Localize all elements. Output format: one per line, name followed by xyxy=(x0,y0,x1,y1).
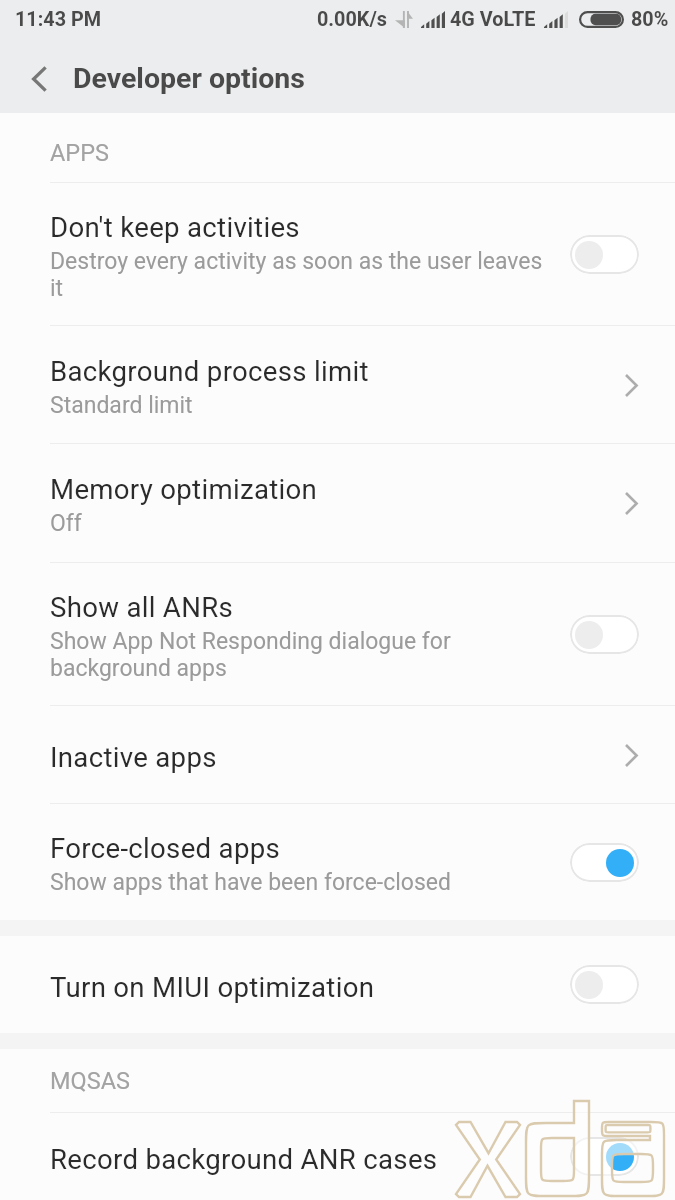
staticText: Standard limit xyxy=(50,392,193,419)
staticText: Memory optimization xyxy=(50,473,318,505)
staticText: Off xyxy=(50,510,82,537)
button[interactable]: Open xyxy=(619,475,675,531)
button[interactable]: Memory optimization xyxy=(0,444,675,562)
staticText: 80% xyxy=(631,8,669,31)
staticText: Show apps that have been force-closed xyxy=(50,869,451,896)
staticText: Force-closed apps xyxy=(50,832,281,864)
button[interactable]: Open xyxy=(619,357,675,413)
button[interactable]: Inactive apps xyxy=(0,706,675,803)
staticText: Turn on MIUI optimization xyxy=(50,971,375,1003)
button[interactable]: Switch off xyxy=(570,615,639,654)
staticText: MQSAS xyxy=(50,1067,130,1095)
staticText: Developer options xyxy=(73,62,305,95)
button[interactable]: Record background ANR cases xyxy=(0,1113,675,1200)
button[interactable]: Switch on xyxy=(570,1137,639,1176)
staticText: 4G VoLTE xyxy=(450,8,536,31)
button[interactable]: Open xyxy=(619,727,675,783)
button[interactable]: Switch off xyxy=(570,965,639,1004)
staticText: 11:43 PM xyxy=(15,8,102,31)
staticText: APPS xyxy=(50,139,109,167)
button[interactable]: Switch off xyxy=(570,235,639,274)
staticText: Show App Not Responding dialogue for bac… xyxy=(50,628,545,682)
staticText: 0.00K/s xyxy=(317,8,387,31)
staticText: Record background ANR cases xyxy=(50,1143,438,1175)
button[interactable]: Back xyxy=(0,45,68,113)
staticText: Inactive apps xyxy=(50,741,217,773)
button[interactable]: Background process limit xyxy=(0,326,675,443)
button[interactable]: Don't keep activities xyxy=(0,183,675,325)
staticText: Don't keep activities xyxy=(50,211,300,243)
button[interactable]: Show all ANRs xyxy=(0,563,675,705)
button[interactable]: Force-closed apps xyxy=(0,804,675,920)
staticText: Destroy every activity as soon as the us… xyxy=(50,248,545,302)
staticText: Show all ANRs xyxy=(50,591,234,623)
button[interactable]: Switch on xyxy=(570,843,639,882)
staticText: Background process limit xyxy=(50,355,369,387)
button[interactable]: Turn on MIUI optimization xyxy=(0,936,675,1033)
